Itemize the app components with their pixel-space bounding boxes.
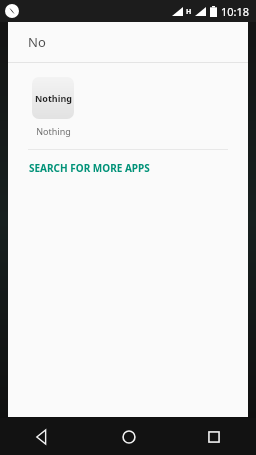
button[interactable]: Home: [86, 418, 171, 455]
staticText: No: [28, 33, 46, 51]
button[interactable]: SEARCH FOR MORE APPS: [8, 150, 248, 186]
button[interactable]: Back: [0, 418, 86, 455]
button[interactable]: Recents: [171, 418, 256, 455]
staticText: Nothing: [36, 125, 71, 137]
staticText: 10:18: [221, 4, 250, 19]
staticText: H: [186, 7, 192, 17]
button[interactable]: Nothing: [28, 77, 78, 137]
staticText: SEARCH FOR MORE APPS: [29, 161, 150, 175]
staticText: Nothing: [35, 92, 72, 104]
